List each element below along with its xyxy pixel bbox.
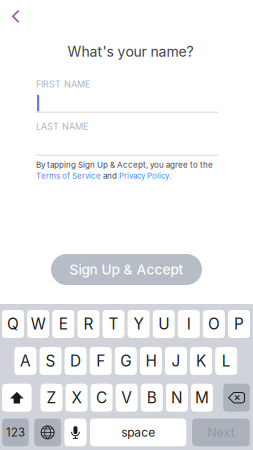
staticText: M <box>195 388 209 407</box>
staticText: FIRST NAME <box>36 79 90 90</box>
staticText: T <box>108 315 118 333</box>
button[interactable]: Next <box>192 418 250 446</box>
button[interactable]: J <box>165 347 187 375</box>
staticText: Terms of Service <box>36 171 101 181</box>
button[interactable]: C <box>91 384 113 412</box>
staticText: Privacy Policy. <box>119 171 171 181</box>
staticText: F <box>96 352 105 370</box>
button[interactable]: 123 <box>2 418 29 446</box>
staticText: Next <box>207 425 234 440</box>
staticText: By tapping Sign Up & Accept, you agree t… <box>36 160 213 170</box>
staticText: D <box>70 352 81 370</box>
staticText: E <box>59 315 68 333</box>
button[interactable]: S <box>39 347 61 375</box>
button[interactable]: A <box>14 347 36 375</box>
staticText: W <box>31 315 46 333</box>
staticText: K <box>196 352 206 370</box>
staticText: Sign Up & Accept <box>69 261 183 278</box>
staticText: L <box>222 352 231 370</box>
button[interactable]: G <box>115 347 137 375</box>
button[interactable]: H <box>140 347 162 375</box>
button[interactable]: Z <box>40 384 62 412</box>
button[interactable]: E <box>52 310 74 338</box>
staticText: Q <box>7 315 19 333</box>
button[interactable]: Privacy Policy. <box>119 171 171 181</box>
button[interactable]: Sign Up & Accept <box>51 254 202 285</box>
staticText: R <box>83 315 93 333</box>
button[interactable]: Q <box>2 310 24 338</box>
staticText: X <box>71 388 81 407</box>
staticText: LAST NAME <box>36 121 88 132</box>
button[interactable]: R <box>77 310 99 338</box>
button[interactable]: Shift <box>2 384 32 412</box>
staticText: G <box>120 352 131 370</box>
staticText: U <box>158 315 169 333</box>
staticText: J <box>171 352 180 370</box>
staticText: A <box>20 352 31 370</box>
button[interactable]: O <box>203 310 225 338</box>
staticText: O <box>208 315 220 333</box>
button[interactable]: F <box>90 347 112 375</box>
button[interactable]: W <box>27 310 49 338</box>
button[interactable]: K <box>190 347 212 375</box>
staticText: C <box>96 388 107 407</box>
staticText: B <box>147 388 157 407</box>
button[interactable]: V <box>116 384 138 412</box>
staticText: I <box>187 315 191 333</box>
button[interactable]: Dictation <box>64 418 86 446</box>
staticText: V <box>121 388 132 407</box>
button[interactable]: U <box>153 310 175 338</box>
staticText: Y <box>134 315 144 333</box>
button[interactable]: Delete <box>223 384 250 412</box>
button[interactable]: P <box>228 310 250 338</box>
button[interactable]: Next keyboard <box>34 418 61 446</box>
staticText: P <box>234 315 244 333</box>
button[interactable]: Back <box>0 0 28 32</box>
button[interactable]: M <box>191 384 213 412</box>
button[interactable]: Y <box>128 310 150 338</box>
button[interactable]: L <box>215 347 237 375</box>
staticText: Z <box>46 388 56 407</box>
button[interactable]: Terms of Service <box>36 171 101 181</box>
staticText: 123 <box>6 425 25 439</box>
staticText: What's your name? <box>67 43 193 60</box>
button[interactable]: D <box>65 347 87 375</box>
staticText: S <box>45 352 55 370</box>
button[interactable]: T <box>102 310 124 338</box>
button[interactable]: N <box>166 384 188 412</box>
staticText: space <box>121 425 155 440</box>
staticText: and <box>101 171 119 181</box>
staticText: N <box>171 388 183 407</box>
button[interactable]: space <box>90 418 186 446</box>
button[interactable]: X <box>65 384 87 412</box>
staticText: H <box>145 352 156 370</box>
button[interactable]: I <box>178 310 200 338</box>
button[interactable]: B <box>141 384 163 412</box>
